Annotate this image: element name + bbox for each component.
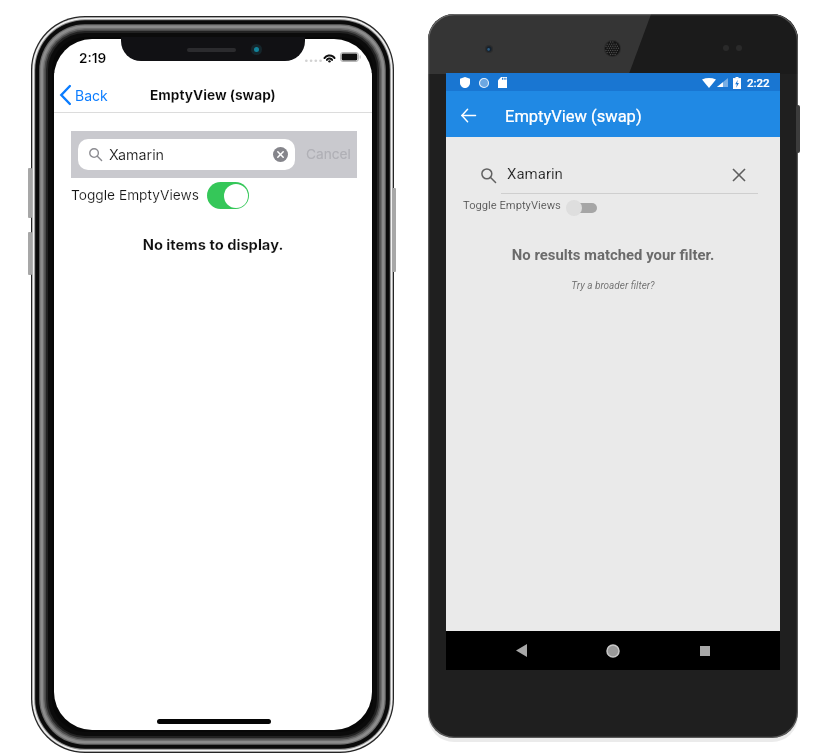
staticText: No items to display. [54, 236, 372, 254]
staticText: EmptyView (swap) [505, 107, 642, 126]
staticText: Try a broader filter? [446, 280, 780, 292]
button[interactable]: Clear search [724, 160, 754, 190]
button[interactable]: Xamarin [78, 139, 295, 170]
staticText: Xamarin [507, 165, 563, 183]
button[interactable]: Clear text [273, 147, 288, 162]
button[interactable]: Cancel [306, 146, 351, 163]
staticText: Toggle EmptyViews [71, 187, 199, 204]
button[interactable]: Home [593, 631, 633, 670]
staticText: Back [75, 87, 108, 104]
staticText: 2:19 [79, 50, 107, 66]
button[interactable]: Recent apps [685, 631, 725, 670]
button[interactable]: Back [54, 79, 118, 111]
button[interactable]: Toggle EmptyViews switch [207, 182, 249, 209]
staticText: EmptyView (swap) [150, 87, 276, 104]
staticText: No results matched your filter. [446, 246, 780, 263]
button[interactable]: Back [448, 95, 488, 135]
button[interactable]: Toggle EmptyViews switch [563, 195, 599, 221]
staticText: 2:22 [747, 76, 770, 89]
staticText: Xamarin [109, 146, 165, 163]
button[interactable]: Back [501, 631, 541, 670]
staticText: Toggle EmptyViews [463, 199, 561, 212]
button[interactable]: Xamarin [474, 151, 714, 195]
